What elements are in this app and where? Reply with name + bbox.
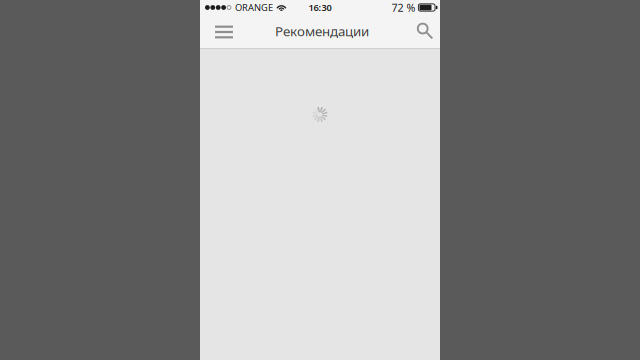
button[interactable]: Menu [200,15,244,48]
button[interactable]: Search [406,15,440,48]
staticText: Рекомендации [275,22,369,40]
staticText: ORANGE [235,1,273,14]
staticText: 16:30 [308,1,331,14]
staticText: 72 % [391,0,415,15]
